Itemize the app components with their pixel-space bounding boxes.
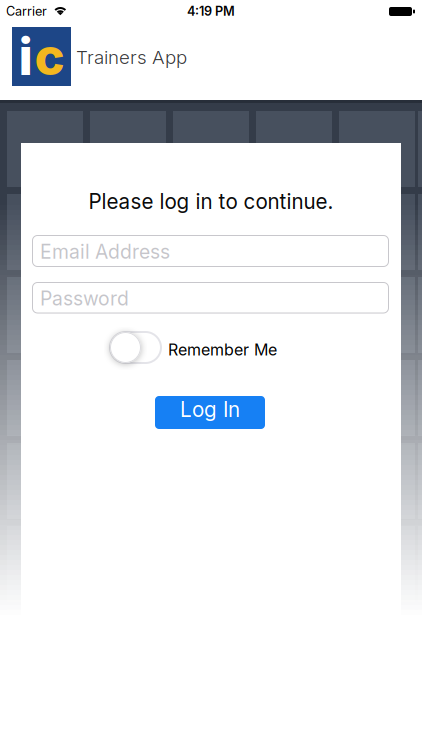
- button[interactable]: Email Address: [32, 235, 389, 267]
- staticText: Password: [40, 287, 129, 310]
- staticText: i: [18, 26, 32, 87]
- staticText: Remember Me: [168, 340, 277, 359]
- staticText: Trainers App: [76, 46, 187, 69]
- staticText: Email Address: [40, 240, 170, 263]
- staticText: Please log in to continue.: [88, 189, 333, 214]
- button[interactable]: Password: [32, 282, 389, 313]
- button[interactable]: Log In: [155, 396, 265, 429]
- staticText: Log In: [180, 397, 240, 422]
- staticText: Carrier: [6, 3, 47, 19]
- staticText: 4:19 PM: [187, 3, 235, 19]
- staticText: c: [34, 26, 64, 87]
- button[interactable]: Remember Me: [110, 332, 161, 363]
